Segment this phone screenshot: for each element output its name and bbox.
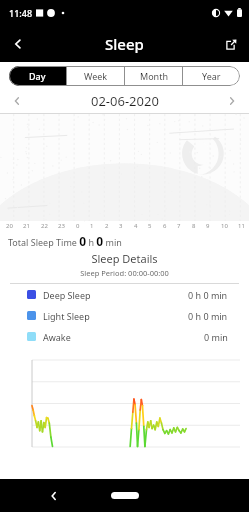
staticText: Year bbox=[202, 70, 221, 82]
staticText: 7 bbox=[177, 222, 181, 230]
staticText: 4 bbox=[134, 222, 138, 230]
staticText: 11:48 bbox=[9, 7, 33, 19]
button[interactable]: Back bbox=[43, 485, 65, 507]
staticText: Deep Sleep bbox=[43, 289, 91, 301]
staticText: 0 h 0 min bbox=[188, 310, 228, 322]
button[interactable]: Week bbox=[67, 66, 124, 86]
button[interactable]: Deep Sleep bbox=[0, 284, 249, 305]
staticText: 9 bbox=[206, 222, 210, 230]
staticText: Day bbox=[29, 70, 46, 82]
staticText: 10 bbox=[221, 222, 228, 230]
staticText: 22 bbox=[41, 222, 48, 230]
staticText: 21 bbox=[23, 222, 30, 230]
button[interactable]: Month bbox=[125, 66, 182, 86]
staticText: 5 bbox=[148, 222, 152, 230]
button[interactable]: Home bbox=[111, 492, 139, 499]
staticText: 02-06-2020 bbox=[91, 92, 159, 110]
button[interactable]: Next day bbox=[221, 90, 243, 112]
staticText: Total Sleep Time 0 h 0 min bbox=[8, 233, 122, 249]
staticText: 0 bbox=[76, 222, 80, 230]
staticText: 3 bbox=[119, 222, 123, 230]
button[interactable]: Year bbox=[183, 66, 240, 86]
staticText: 11 bbox=[238, 222, 245, 230]
staticText: 20 bbox=[6, 222, 13, 230]
staticText: Week bbox=[84, 70, 108, 82]
staticText: 2 bbox=[105, 222, 109, 230]
button[interactable]: Awake bbox=[0, 326, 249, 347]
staticText: 0 h 0 min bbox=[188, 289, 228, 301]
staticText: 1 bbox=[90, 222, 94, 230]
staticText: 8 bbox=[192, 222, 196, 230]
staticText: Sleep Period: 00:00-00:00 bbox=[80, 268, 169, 278]
button[interactable]: Back bbox=[0, 26, 36, 62]
staticText: Sleep bbox=[105, 34, 144, 54]
staticText: 0 min bbox=[204, 331, 228, 343]
staticText: 23 bbox=[58, 222, 65, 230]
button[interactable]: Share bbox=[213, 26, 249, 62]
button[interactable]: Previous day bbox=[6, 90, 28, 112]
staticText: Sleep Details bbox=[91, 251, 158, 266]
button[interactable]: Light Sleep bbox=[0, 305, 249, 326]
staticText: Light Sleep bbox=[43, 310, 90, 322]
staticText: Awake bbox=[43, 331, 71, 343]
staticText: 6 bbox=[163, 222, 167, 230]
staticText: Month bbox=[140, 70, 168, 82]
button[interactable]: Day bbox=[9, 66, 66, 86]
